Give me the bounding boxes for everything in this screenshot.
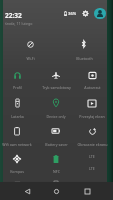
staticText: Kompas [10, 169, 24, 174]
button[interactable]: Autozrzut [74, 67, 110, 91]
button[interactable]: Battery saver [38, 123, 74, 147]
button[interactable]: NFC [38, 151, 74, 175]
staticText: Wi-Fi [26, 56, 35, 61]
staticText: LTE [89, 166, 95, 171]
staticText: Wifi own network [2, 142, 32, 147]
button[interactable]: Home [49, 184, 64, 199]
staticText: LTE [89, 154, 95, 159]
staticText: Device only [46, 114, 66, 119]
button[interactable]: LTE [74, 154, 110, 176]
button[interactable]: Latarka [0, 95, 35, 119]
button[interactable] [74, 177, 110, 200]
button[interactable]: User profile [94, 8, 106, 19]
staticText: Tryb samolotowy [42, 85, 71, 90]
button[interactable]: Device only [38, 95, 74, 119]
button[interactable]: Profil [0, 67, 35, 91]
staticText: Profil [13, 85, 22, 90]
staticText: Battery saver [45, 142, 68, 147]
button[interactable]: Settings [81, 9, 90, 18]
staticText: 22:32 [5, 11, 22, 20]
staticText: Bluetooth [76, 56, 93, 61]
staticText: Autozrzut [84, 85, 101, 90]
staticText: Obracanie ekranu [77, 142, 108, 147]
button[interactable]: Obracanie ekranu [74, 123, 110, 147]
staticText: środa, 11 lutego [5, 21, 33, 26]
button[interactable]: Wi-Fi [12, 36, 48, 60]
staticText: 36% [68, 11, 77, 17]
button[interactable]: Kompas [0, 151, 35, 175]
button[interactable]: Bluetooth [66, 36, 102, 60]
button[interactable] [38, 177, 74, 200]
staticText: Przesyłaj ekran [79, 114, 105, 119]
button[interactable]: Przesyłaj ekran [74, 95, 110, 119]
button[interactable] [0, 177, 35, 200]
button[interactable]: Tryb samolotowy [38, 67, 74, 91]
button[interactable]: Back [20, 184, 35, 199]
button[interactable]: Recent apps [80, 184, 95, 199]
staticText: NFC [53, 169, 60, 174]
button[interactable]: Wifi own network [0, 123, 35, 147]
staticText: Latarka [11, 114, 24, 119]
